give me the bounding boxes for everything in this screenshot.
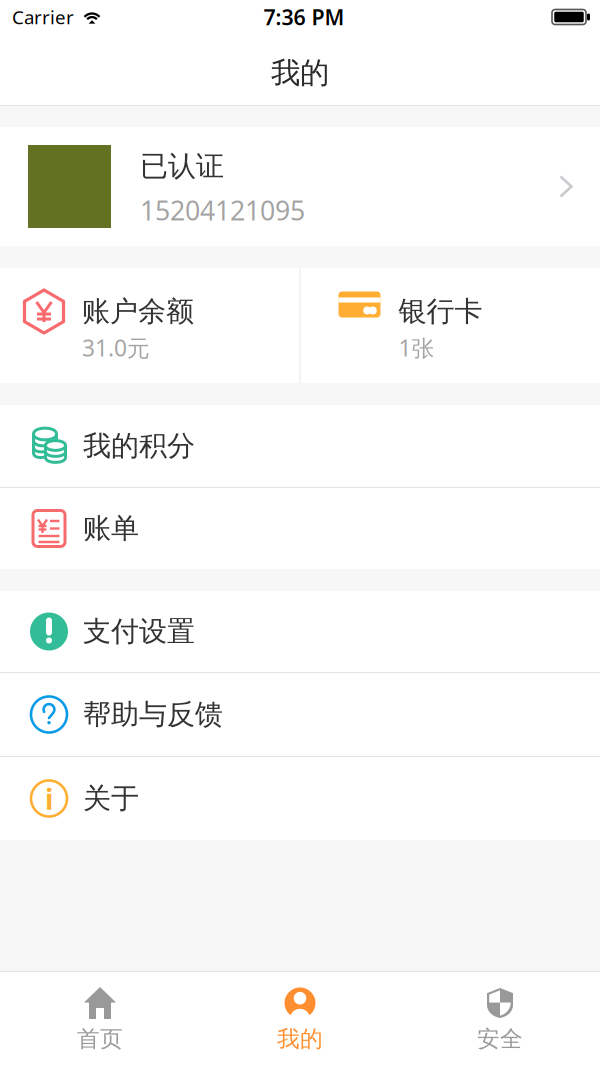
button[interactable]: 安全 [400, 971, 600, 1067]
button[interactable]: 账户余额 [0, 268, 299, 383]
staticText: 关于 [83, 781, 139, 816]
button[interactable]: 已认证 [0, 127, 600, 246]
button[interactable]: i [0, 757, 600, 840]
button[interactable]: 我的积分 [0, 405, 600, 487]
button[interactable]: 帮助与反馈 [0, 673, 600, 756]
staticText: 帮助与反馈 [83, 697, 223, 732]
button[interactable]: 首页 [0, 971, 200, 1067]
staticText: 1张 [398, 333, 434, 363]
staticText: 安全 [477, 1025, 523, 1053]
button[interactable]: 账单 [0, 488, 600, 569]
staticText: 我的 [277, 1025, 323, 1053]
staticText: 首页 [77, 1025, 123, 1053]
staticText: 15204121095 [140, 192, 305, 228]
staticText: 已认证 [140, 149, 224, 183]
staticText: 银行卡 [398, 294, 482, 329]
button[interactable]: 银行卡 [300, 268, 600, 383]
staticText: i [45, 780, 53, 818]
staticText: 我的 [271, 55, 329, 91]
button[interactable]: 我的 [200, 971, 400, 1067]
button[interactable]: 支付设置 [0, 591, 600, 672]
staticText: Carrier [12, 5, 74, 29]
staticText: 我的积分 [83, 429, 195, 463]
staticText: 31.0元 [82, 333, 150, 363]
staticText: 账户余额 [82, 294, 194, 329]
staticText: 账单 [83, 511, 139, 546]
staticText: 7:36 PM [263, 3, 344, 31]
staticText: 支付设置 [83, 614, 195, 649]
